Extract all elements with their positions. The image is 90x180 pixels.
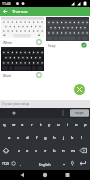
staticText: y bbox=[48, 122, 51, 128]
staticText: c bbox=[35, 148, 38, 154]
staticText: Gray bbox=[48, 43, 56, 48]
staticText: u bbox=[57, 122, 60, 128]
staticText: Themes bbox=[12, 9, 28, 15]
staticText: s bbox=[17, 135, 20, 141]
button[interactable] bbox=[74, 84, 85, 95]
button[interactable]: q bbox=[0, 118, 90, 170]
staticText: d bbox=[26, 135, 29, 141]
staticText: z bbox=[18, 148, 20, 154]
staticText: k bbox=[71, 135, 74, 141]
staticText: r bbox=[31, 122, 33, 128]
staticText: b bbox=[53, 148, 56, 154]
staticText: swipe bbox=[75, 111, 84, 115]
staticText: f bbox=[36, 135, 38, 141]
staticText: w bbox=[12, 122, 16, 128]
staticText: e bbox=[21, 122, 24, 128]
staticText: i bbox=[67, 122, 69, 128]
button[interactable]: Gray bbox=[46, 17, 89, 49]
staticText: , bbox=[20, 161, 22, 166]
staticText: t bbox=[40, 122, 42, 128]
staticText: Black bbox=[3, 73, 12, 78]
staticText: n bbox=[62, 148, 65, 154]
staticText: Try out your setup bbox=[2, 102, 30, 106]
button[interactable]: White bbox=[1, 17, 44, 46]
staticText: j bbox=[63, 135, 65, 141]
button[interactable]: Themes bbox=[0, 7, 90, 16]
staticText: a bbox=[8, 135, 11, 141]
staticText: v bbox=[44, 148, 47, 154]
button[interactable]: Black bbox=[1, 47, 44, 79]
staticText: p bbox=[84, 122, 87, 128]
staticText: o bbox=[75, 122, 78, 128]
staticText: x bbox=[26, 148, 29, 154]
staticText: ?123 bbox=[2, 162, 9, 166]
button[interactable] bbox=[0, 170, 90, 180]
staticText: 11:45 bbox=[2, 1, 11, 6]
staticText: l bbox=[81, 135, 83, 141]
staticText: h bbox=[53, 135, 56, 141]
staticText: English bbox=[39, 162, 51, 167]
staticText: q bbox=[3, 122, 6, 128]
staticText: g bbox=[44, 135, 47, 141]
staticText: White bbox=[3, 40, 13, 45]
staticText: m bbox=[71, 148, 75, 154]
